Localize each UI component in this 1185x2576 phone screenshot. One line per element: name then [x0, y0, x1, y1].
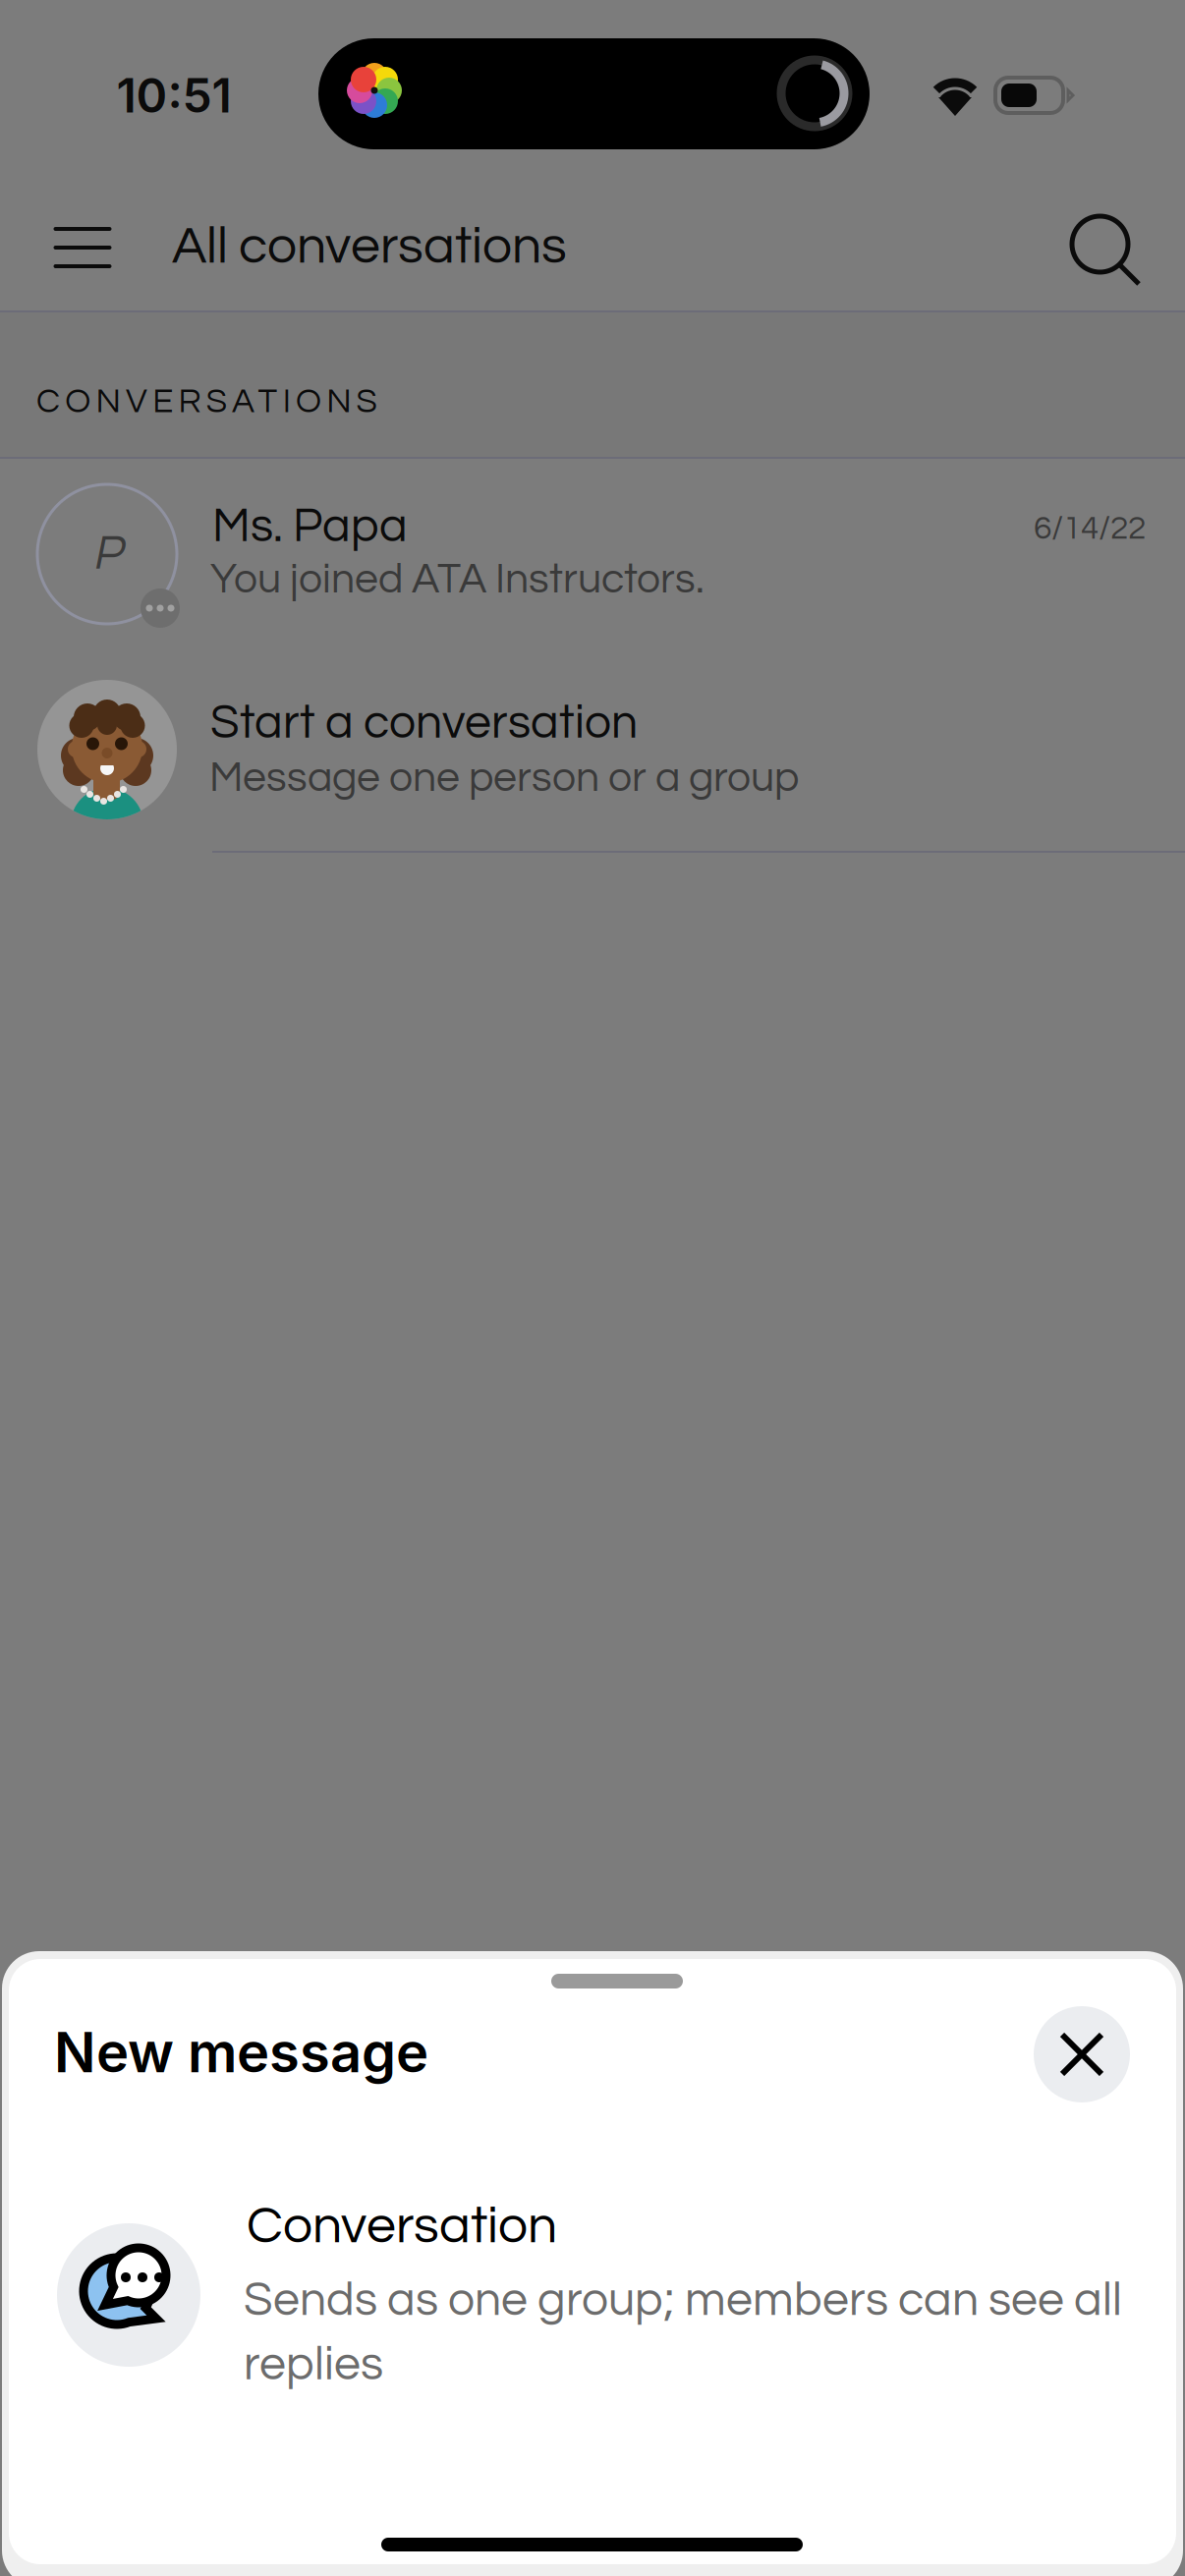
button[interactable]: Conversation: [0, 0, 1185, 2427]
button[interactable]: Start a conversation: [0, 0, 1185, 853]
staticText: 10:51: [116, 67, 231, 124]
button[interactable]: P: [0, 0, 1185, 657]
staticText: CONVERSATIONS: [36, 384, 377, 419]
staticText: P: [92, 530, 122, 578]
staticText: You joined ATA Instructors.: [210, 558, 705, 601]
button[interactable]: Menu: [4, 174, 161, 321]
staticText: New message: [54, 2019, 428, 2086]
staticText: All conversations: [172, 220, 567, 274]
staticText: Start a conversation: [210, 699, 638, 747]
button[interactable]: Close: [1034, 2006, 1130, 2102]
staticText: Message one person or a group: [209, 756, 799, 800]
button[interactable]: Search: [1033, 177, 1180, 324]
staticText: Sends as one group; members can see all …: [244, 2276, 1122, 2389]
staticText: Ms. Papa: [212, 502, 408, 551]
staticText: 6/14/22: [1034, 512, 1146, 545]
staticText: Conversation: [247, 2199, 557, 2253]
